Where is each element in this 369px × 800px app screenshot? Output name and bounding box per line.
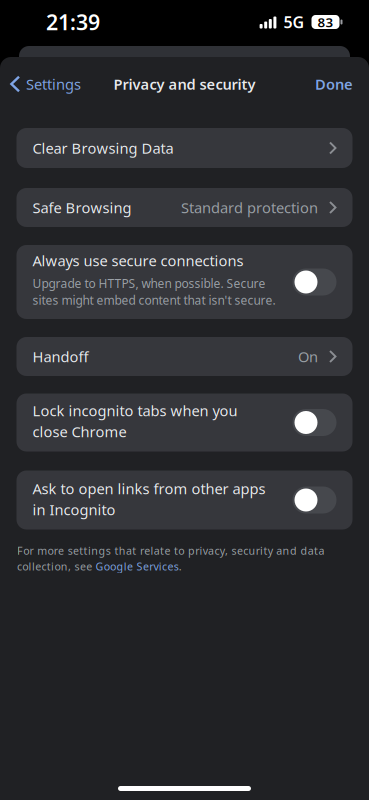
button[interactable]: Always use secure connections	[292, 268, 336, 295]
button[interactable]: Lock incognito tabs when you close Chrom…	[292, 409, 336, 436]
staticText: Always use secure connections	[32, 251, 243, 270]
staticText: in Incognito	[32, 500, 115, 519]
staticText: close Chrome	[32, 422, 126, 441]
staticText: 21:39	[46, 8, 100, 36]
button[interactable]: Clear Browsing Data	[16, 128, 352, 168]
staticText: 5G	[283, 11, 304, 33]
staticText: Clear Browsing Data	[32, 138, 173, 158]
staticText: .	[179, 559, 182, 573]
staticText: sites might embed content that isn't sec…	[32, 292, 275, 308]
staticText: Privacy and security	[113, 74, 255, 94]
button[interactable]: Settings	[10, 74, 81, 94]
staticText: Standard protection	[181, 198, 318, 217]
staticText: Safe Browsing	[32, 198, 131, 217]
staticText: For more settings that relate to privacy…	[17, 543, 324, 558]
button[interactable]: Done	[315, 74, 353, 94]
staticText: Ask to open links from other apps	[32, 479, 265, 498]
button[interactable]: Handoff	[16, 337, 352, 376]
staticText: 83	[317, 13, 333, 31]
button[interactable]: Safe Browsing	[16, 188, 352, 227]
staticText: Done	[315, 74, 353, 94]
button[interactable]: Google Services	[95, 559, 179, 573]
staticText: Upgrade to HTTPS, when possible. Secure	[32, 275, 265, 291]
staticText: Settings	[26, 74, 81, 94]
staticText: Handoff	[32, 347, 88, 366]
staticText: Lock incognito tabs when you	[32, 401, 237, 420]
staticText: collection, see	[17, 559, 95, 573]
staticText: Google Services	[95, 559, 179, 573]
button[interactable]: Ask to open links from other apps in Inc…	[292, 486, 336, 513]
staticText: On	[298, 347, 318, 366]
